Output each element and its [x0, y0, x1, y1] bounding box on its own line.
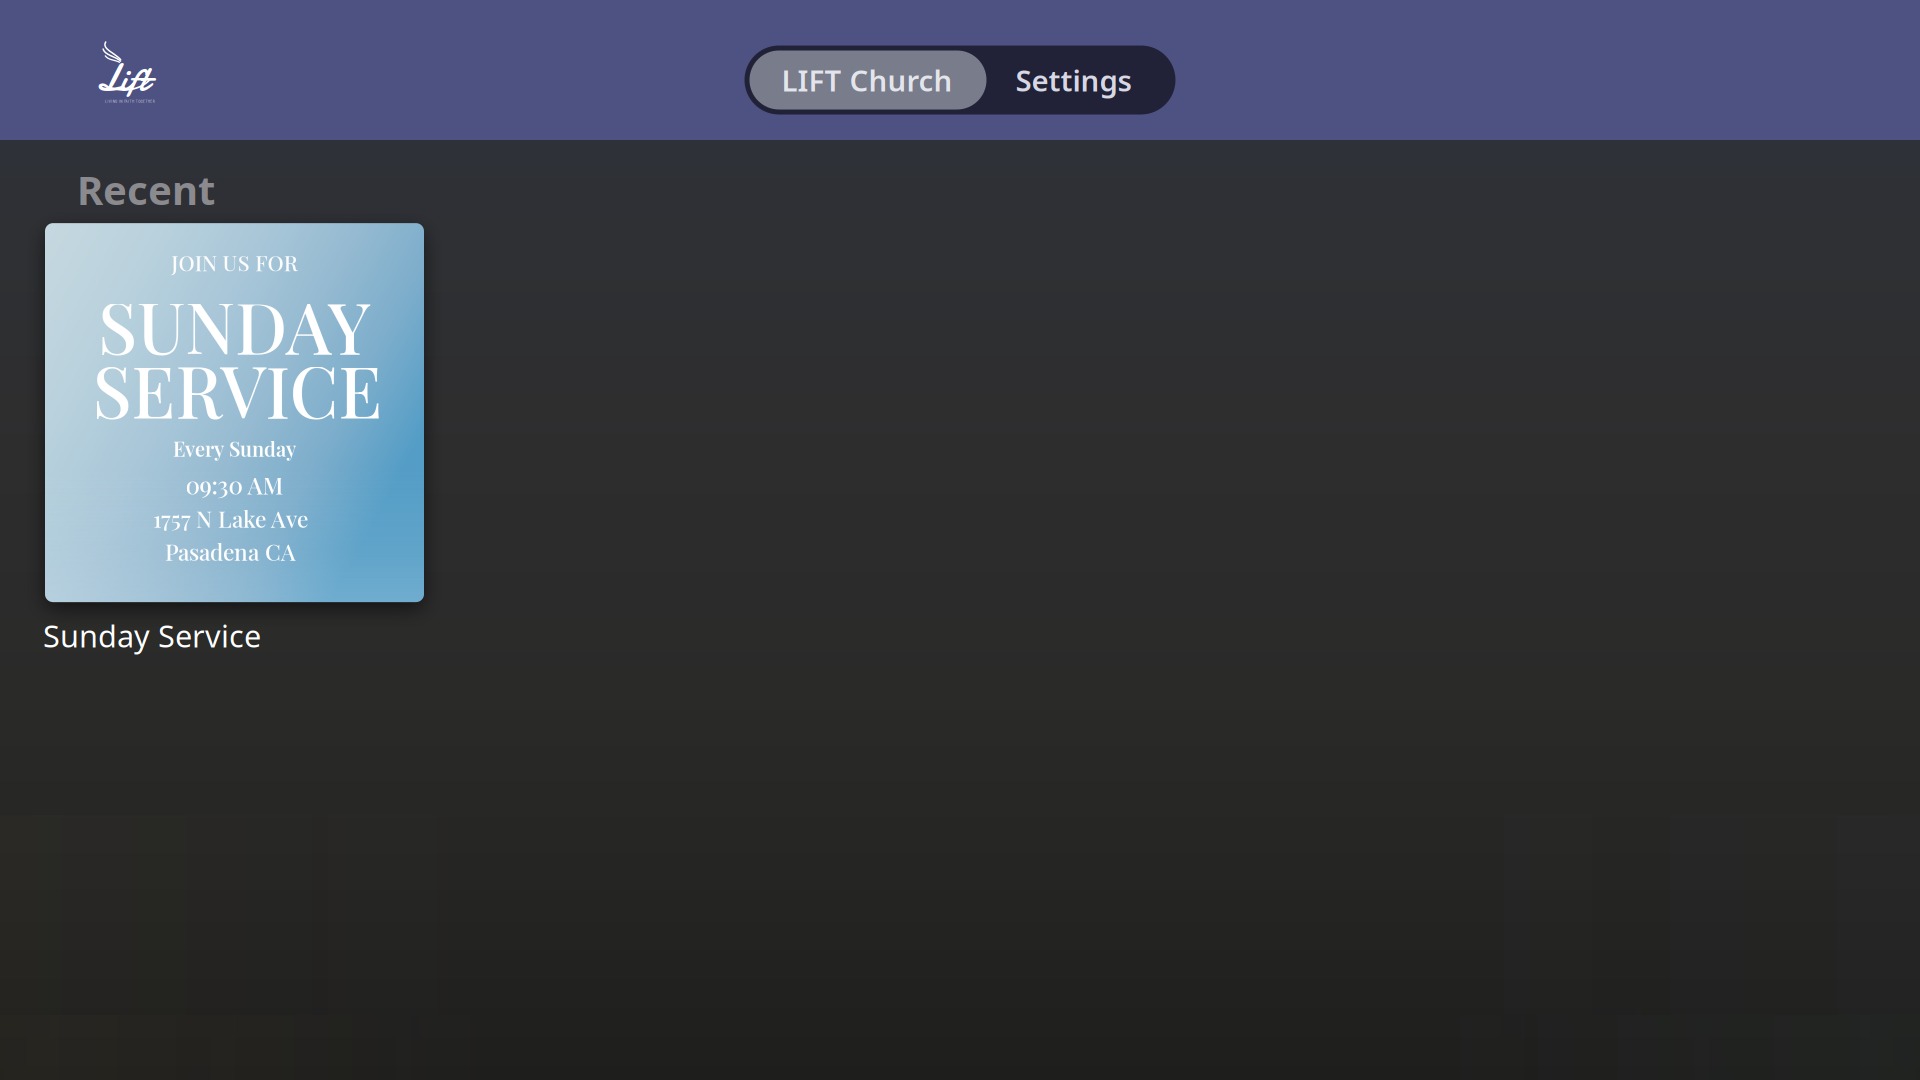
staticText: Lift: [96, 52, 149, 105]
staticText: SERVICE: [92, 342, 382, 436]
button[interactable]: Settings: [986, 50, 1170, 109]
staticText: Pasadena CA: [165, 536, 296, 566]
staticText: LIVING IN FAITH TOGETHER: [105, 100, 155, 103]
staticText: Every Sunday: [173, 435, 296, 462]
staticText: JOIN US FOR: [171, 248, 298, 276]
staticText: 1757 N Lake Ave: [153, 503, 308, 533]
staticText: Settings: [1015, 60, 1131, 99]
staticText: Recent: [77, 163, 215, 216]
staticText: Sunday Service: [43, 615, 261, 656]
staticText: LIFT Church: [781, 60, 952, 99]
staticText: SUNDAY: [98, 278, 371, 372]
button[interactable]: LIFT Church: [749, 50, 986, 109]
button[interactable]: JOIN US FOR: [45, 223, 424, 643]
staticText: 09:30 AM: [185, 469, 283, 500]
